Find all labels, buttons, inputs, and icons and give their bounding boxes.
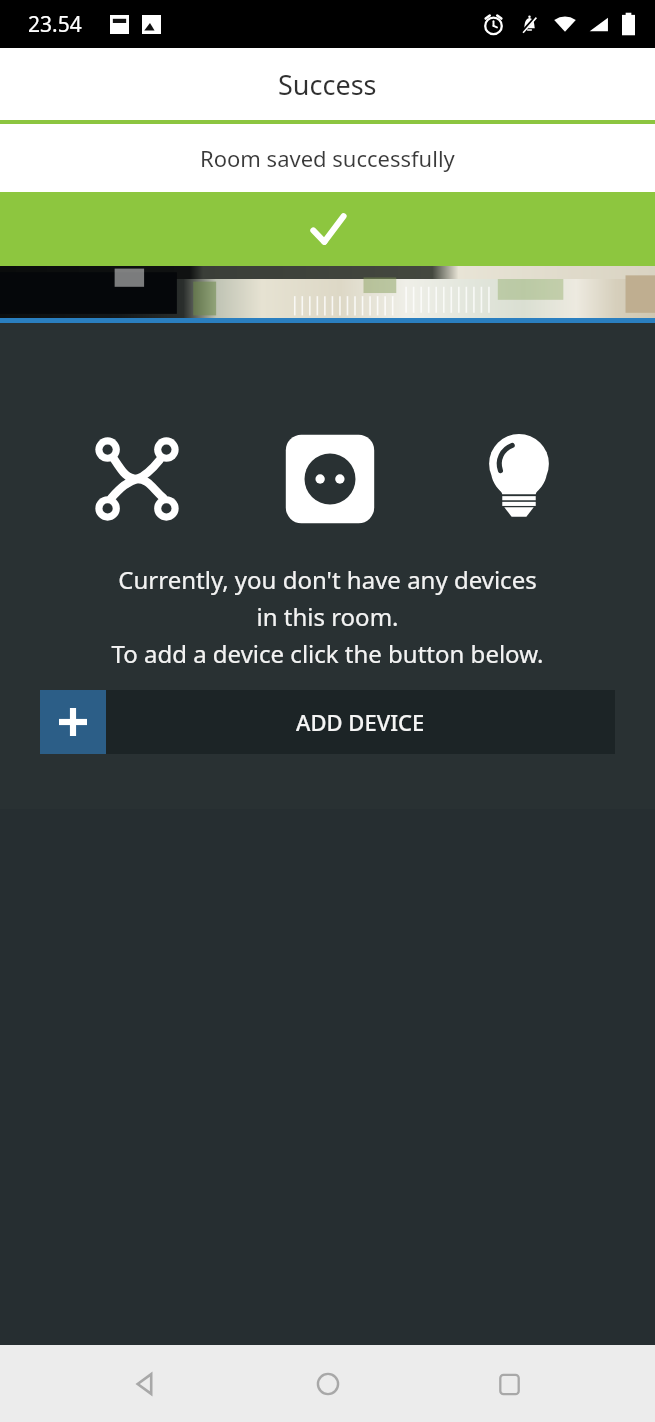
staticText: Currently, you don't have any devices in… <box>14 563 641 670</box>
button[interactable]: Recent apps <box>473 1348 545 1420</box>
button[interactable]: Success confirmation <box>0 192 655 266</box>
other: Switch device type <box>88 430 186 528</box>
button[interactable]: ADD DEVICE <box>40 690 615 754</box>
button[interactable]: Back <box>110 1348 182 1420</box>
staticText: 23.54 <box>28 10 82 39</box>
button[interactable]: Home <box>292 1348 364 1420</box>
staticText: Success <box>278 66 377 103</box>
staticText: ADD DEVICE <box>296 707 425 737</box>
other: Light device type <box>470 430 568 528</box>
other: Socket device type <box>278 427 382 531</box>
staticText: Room saved successfully <box>200 143 455 173</box>
